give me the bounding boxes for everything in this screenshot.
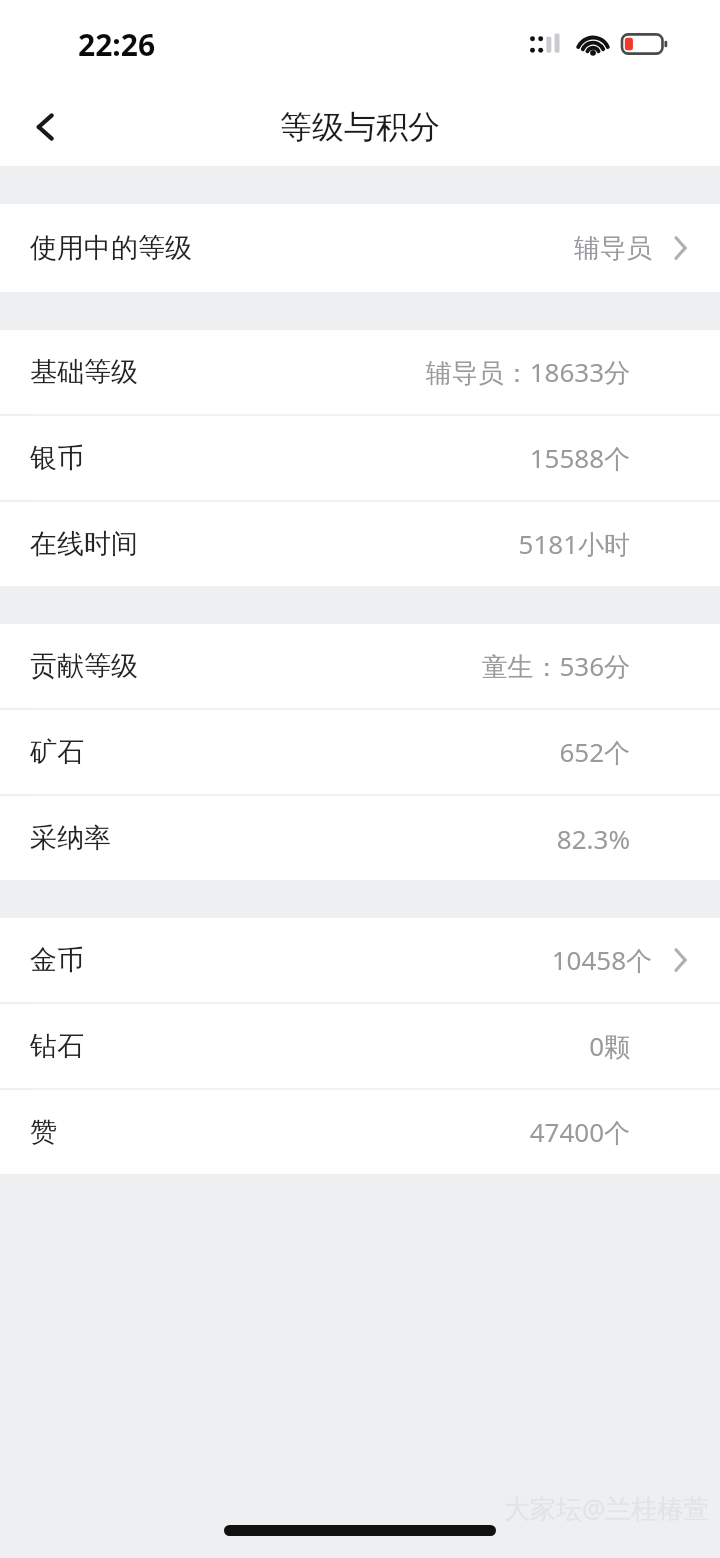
staticText: 使用中的等级 (30, 231, 192, 265)
staticText: 赞 (30, 1115, 57, 1149)
button[interactable]: 矿石 (0, 710, 720, 794)
staticText: 652个 (559, 734, 630, 770)
staticText: 辅导员：18633分 (425, 354, 630, 390)
staticText: 钻石 (30, 1029, 84, 1063)
staticText: 22:26 (78, 24, 156, 65)
button[interactable]: 金币 (0, 918, 720, 1002)
staticText: 辅导员 (574, 232, 652, 265)
staticText: 等级与积分 (280, 107, 440, 147)
button[interactable]: 赞 (0, 1090, 720, 1174)
staticText: 银币 (30, 441, 84, 475)
button[interactable]: 采纳率 (0, 796, 720, 880)
staticText: 0颗 (589, 1028, 630, 1064)
staticText: 贡献等级 (30, 649, 138, 683)
button[interactable]: 使用中的等级 (0, 204, 720, 292)
staticText: 采纳率 (30, 821, 111, 855)
button[interactable]: 基础等级 (0, 330, 720, 414)
staticText: 15588个 (529, 440, 630, 476)
button[interactable]: 银币 (0, 416, 720, 500)
button[interactable]: 在线时间 (0, 502, 720, 586)
staticText: 在线时间 (30, 527, 138, 561)
button[interactable]: 贡献等级 (0, 624, 720, 708)
staticText: 10458个 (551, 942, 652, 978)
button[interactable]: Back (18, 99, 74, 155)
staticText: 金币 (30, 943, 84, 977)
staticText: 大家坛@兰桂椿萱 (504, 1490, 710, 1526)
staticText: 47400个 (529, 1114, 630, 1150)
staticText: 5181小时 (518, 526, 630, 562)
staticText: 矿石 (30, 735, 84, 769)
staticText: 82.3% (556, 821, 630, 856)
staticText: 童生：536分 (481, 648, 630, 684)
staticText: 基础等级 (30, 355, 138, 389)
button[interactable]: 钻石 (0, 1004, 720, 1088)
